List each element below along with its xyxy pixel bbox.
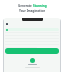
button[interactable] [5, 48, 59, 54]
staticText: Stunning [33, 4, 47, 8]
other: Success [30, 58, 35, 63]
button[interactable] [5, 28, 59, 31]
staticText: Generate [18, 4, 33, 8]
staticText: Your Imagination [19, 9, 46, 13]
